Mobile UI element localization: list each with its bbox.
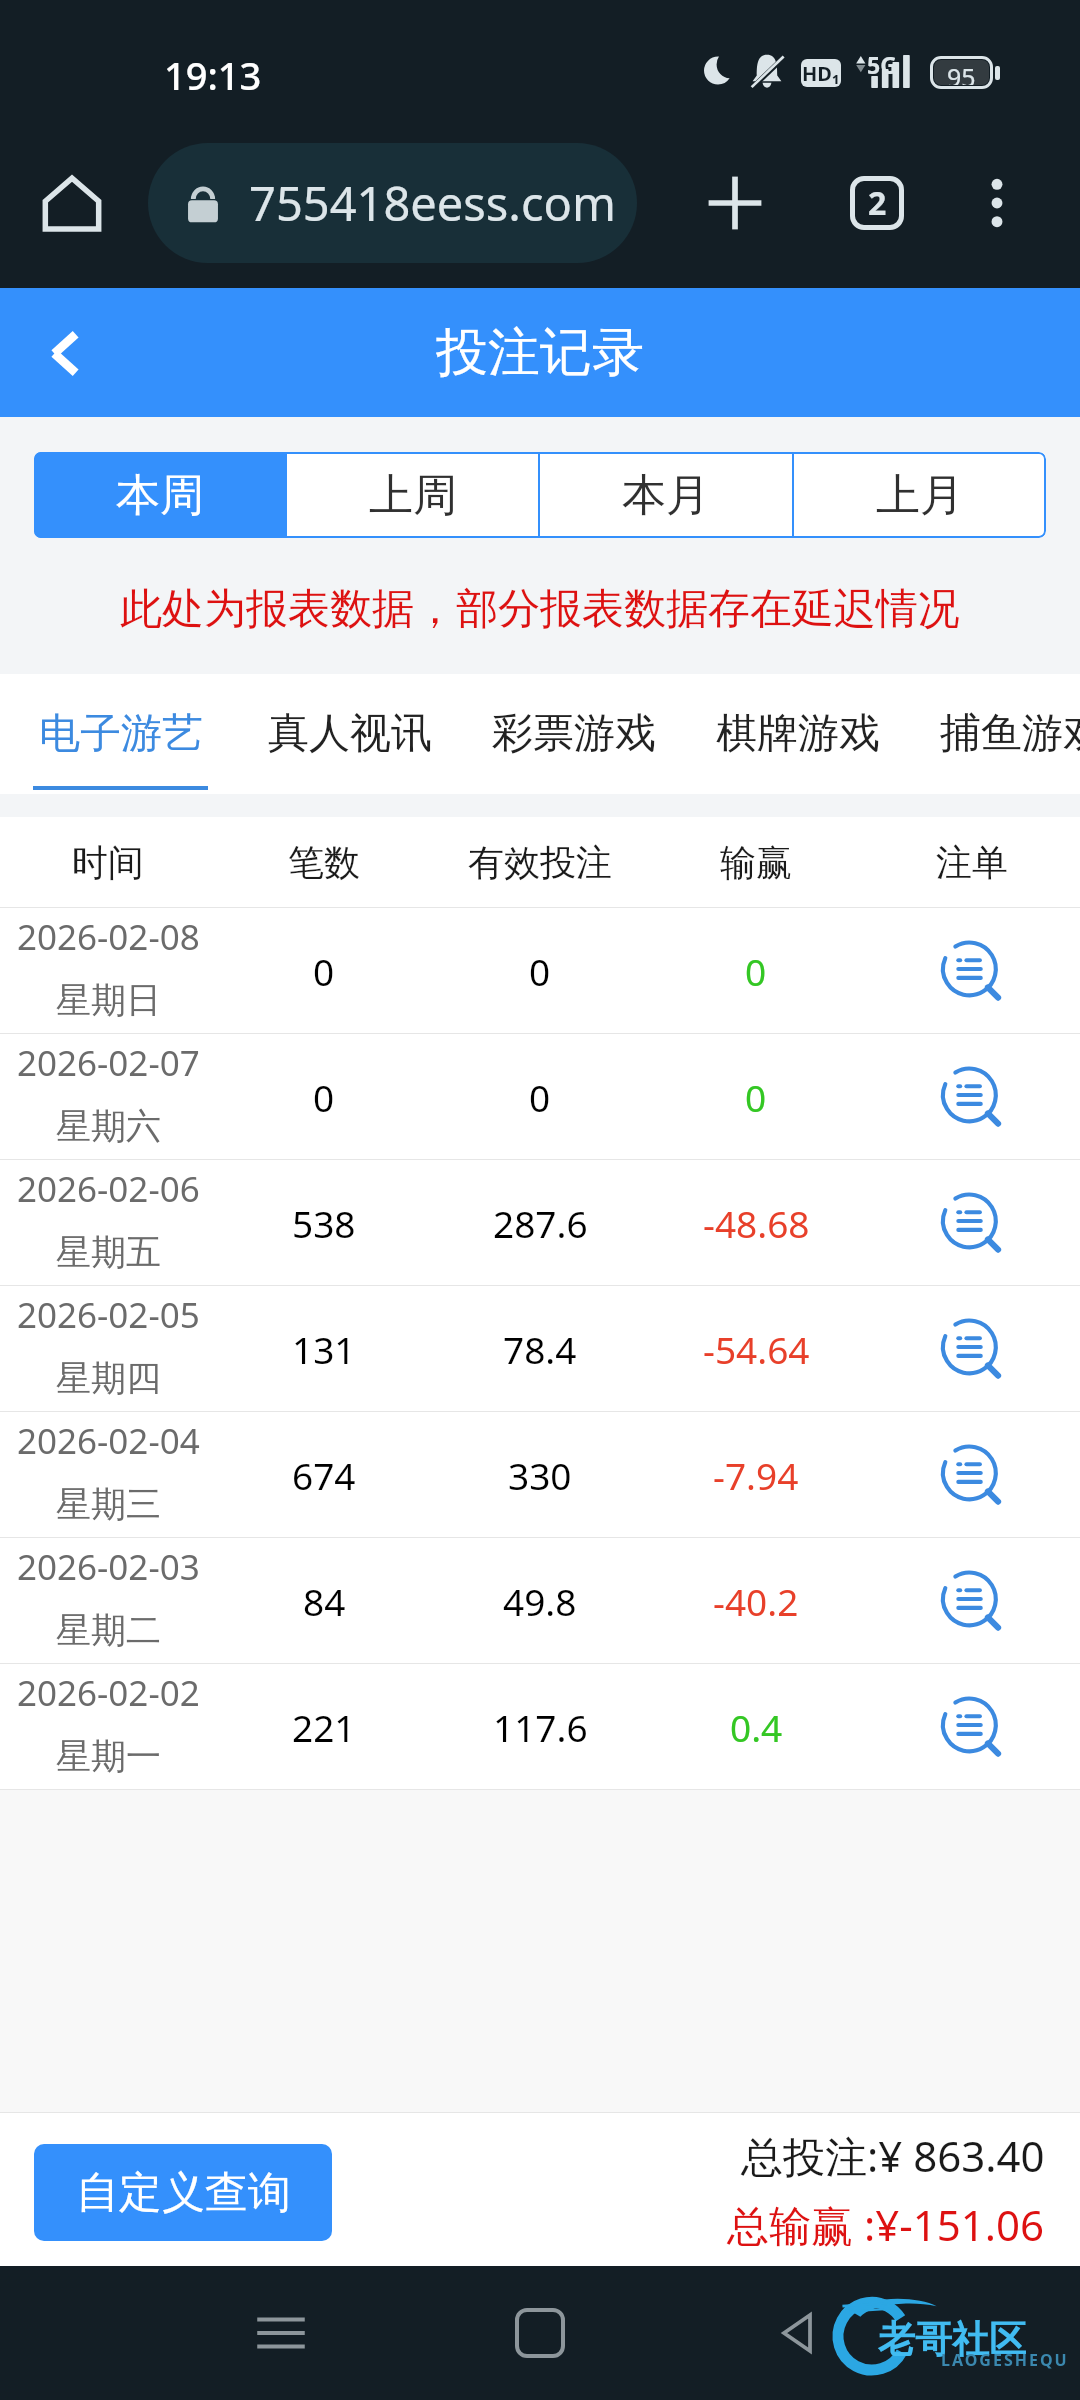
button[interactable]: 上月 bbox=[794, 452, 1046, 538]
button[interactable]: 2026-02-04 bbox=[0, 1412, 1080, 1537]
staticText: 131 bbox=[292, 1324, 356, 1374]
staticText: 2026-02-06 bbox=[17, 1165, 200, 1213]
staticText: 笔数 bbox=[288, 840, 360, 885]
button[interactable]: 彩票游戏 bbox=[492, 674, 656, 794]
staticText: 221 bbox=[292, 1702, 356, 1752]
staticText: 0 bbox=[313, 1072, 335, 1122]
button[interactable]: 捕鱼游戏 bbox=[940, 674, 1080, 794]
button[interactable]: Recents bbox=[221, 2273, 341, 2393]
button[interactable]: 自定义查询 bbox=[34, 2144, 332, 2241]
button[interactable]: 电子游艺 bbox=[33, 674, 208, 794]
staticText: 星期六 bbox=[56, 1104, 161, 1148]
staticText: 2026-02-05 bbox=[17, 1291, 200, 1339]
staticText: 投注记录 bbox=[436, 320, 644, 386]
staticText: 时间 bbox=[72, 840, 144, 885]
staticText: 78.4 bbox=[503, 1324, 577, 1374]
staticText: -7.94 bbox=[713, 1450, 799, 1500]
staticText: 星期三 bbox=[56, 1482, 161, 1526]
button[interactable]: Home bbox=[480, 2273, 600, 2393]
button[interactable]: 本月 bbox=[540, 452, 792, 538]
staticText: 0 bbox=[745, 946, 767, 996]
button[interactable]: 755418eess.com bbox=[148, 143, 637, 263]
staticText: 星期一 bbox=[56, 1734, 161, 1778]
staticText: 星期日 bbox=[56, 978, 161, 1022]
staticText: 0 bbox=[313, 946, 335, 996]
button[interactable]: View bet details bbox=[864, 1034, 1080, 1159]
button[interactable]: Tabs bbox=[822, 148, 932, 258]
staticText: -40.2 bbox=[713, 1576, 799, 1626]
staticText: 755418eess.com bbox=[249, 171, 616, 235]
button[interactable]: 上周 bbox=[287, 452, 538, 538]
button[interactable]: 2026-02-07 bbox=[0, 1034, 1080, 1159]
staticText: 287.6 bbox=[493, 1198, 588, 1248]
staticText: 2026-02-07 bbox=[17, 1039, 200, 1087]
button[interactable]: 本周 bbox=[34, 452, 285, 538]
button[interactable]: Back bbox=[14, 302, 116, 404]
staticText: 49.8 bbox=[503, 1576, 577, 1626]
staticText: 电子游艺 bbox=[39, 708, 203, 760]
button[interactable]: 棋牌游戏 bbox=[716, 674, 880, 794]
staticText: 538 bbox=[292, 1198, 356, 1248]
staticText: 总输赢 :¥-151.06 bbox=[727, 2196, 1045, 2253]
staticText: 捕鱼游戏 bbox=[940, 708, 1080, 760]
staticText: 0.4 bbox=[730, 1702, 783, 1752]
staticText: 2 bbox=[868, 181, 887, 225]
staticText: 19:13 bbox=[164, 49, 262, 101]
button[interactable]: 2026-02-08 bbox=[0, 908, 1080, 1033]
staticText: 2026-02-03 bbox=[17, 1543, 200, 1591]
staticText: 真人视讯 bbox=[268, 708, 432, 760]
staticText: 330 bbox=[508, 1450, 572, 1500]
button[interactable]: More options bbox=[942, 148, 1052, 258]
button[interactable]: Back bbox=[738, 2273, 858, 2393]
button[interactable]: View bet details bbox=[864, 1286, 1080, 1411]
button[interactable]: View bet details bbox=[864, 1538, 1080, 1663]
staticText: 2026-02-08 bbox=[17, 913, 200, 961]
staticText: 0 bbox=[529, 1072, 551, 1122]
staticText: 674 bbox=[292, 1450, 356, 1500]
button[interactable]: Home bbox=[17, 148, 127, 258]
staticText: -54.64 bbox=[703, 1324, 810, 1374]
staticText: -48.68 bbox=[703, 1198, 810, 1248]
staticText: 84 bbox=[303, 1576, 346, 1626]
staticText: 星期二 bbox=[56, 1608, 161, 1652]
button[interactable]: View bet details bbox=[864, 1664, 1080, 1789]
staticText: 2026-02-04 bbox=[17, 1417, 200, 1465]
button[interactable]: View bet details bbox=[864, 908, 1080, 1033]
staticText: HD₁ bbox=[802, 60, 840, 87]
button[interactable]: View bet details bbox=[864, 1412, 1080, 1537]
staticText: 此处为报表数据，部分报表数据存在延迟情况 bbox=[0, 583, 1080, 636]
button[interactable]: New tab bbox=[680, 148, 790, 258]
staticText: 5G bbox=[867, 49, 897, 80]
staticText: 上月 bbox=[876, 468, 964, 523]
staticText: 本周 bbox=[116, 468, 204, 523]
staticText: 上周 bbox=[369, 468, 457, 523]
staticText: 95 bbox=[947, 60, 976, 85]
staticText: 彩票游戏 bbox=[492, 708, 656, 760]
staticText: 117.6 bbox=[493, 1702, 588, 1752]
button[interactable]: 2026-02-05 bbox=[0, 1286, 1080, 1411]
staticText: 总投注:¥ 863.40 bbox=[741, 2127, 1045, 2184]
staticText: 星期四 bbox=[56, 1356, 161, 1400]
button[interactable]: 2026-02-06 bbox=[0, 1160, 1080, 1285]
staticText: 棋牌游戏 bbox=[716, 708, 880, 760]
staticText: 注单 bbox=[936, 840, 1008, 885]
staticText: 自定义查询 bbox=[76, 2166, 291, 2220]
button[interactable]: 2026-02-02 bbox=[0, 1664, 1080, 1789]
staticText: 2026-02-02 bbox=[17, 1669, 200, 1717]
staticText: 0 bbox=[529, 946, 551, 996]
button[interactable]: 真人视讯 bbox=[268, 674, 432, 794]
staticText: 星期五 bbox=[56, 1230, 161, 1274]
button[interactable]: View bet details bbox=[864, 1160, 1080, 1285]
staticText: 输赢 bbox=[720, 840, 792, 885]
staticText: 有效投注 bbox=[468, 840, 612, 885]
staticText: 本月 bbox=[622, 468, 710, 523]
button[interactable]: 2026-02-03 bbox=[0, 1538, 1080, 1663]
staticText: 老哥社区 bbox=[878, 2316, 1026, 2363]
staticText: 0 bbox=[745, 1072, 767, 1122]
staticText: LAOGESHEQU bbox=[941, 2349, 1069, 2371]
